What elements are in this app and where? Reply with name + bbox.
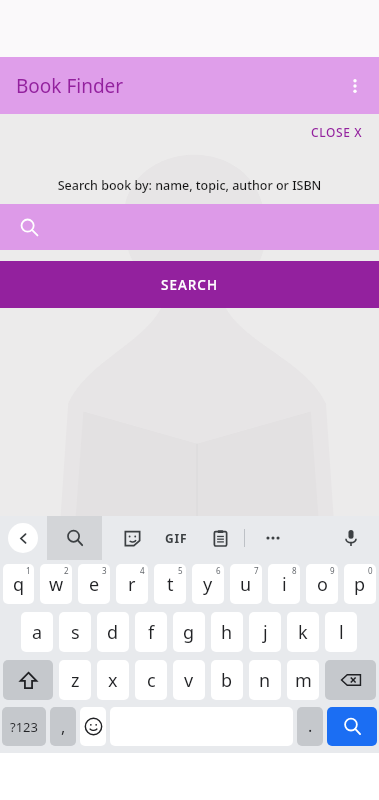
button[interactable]: Emoji bbox=[80, 707, 106, 746]
button[interactable]: c bbox=[135, 660, 167, 700]
button[interactable]: i bbox=[268, 564, 300, 604]
staticText: w bbox=[49, 572, 64, 597]
button[interactable]: Clipboard bbox=[198, 516, 242, 560]
staticText: g bbox=[183, 620, 195, 645]
button[interactable]: s bbox=[59, 612, 91, 652]
button[interactable]: Back bbox=[8, 523, 38, 553]
staticText: a bbox=[32, 620, 43, 645]
staticText: h bbox=[221, 620, 233, 645]
staticText: 0 bbox=[368, 565, 373, 576]
staticText: b bbox=[221, 668, 233, 693]
staticText: v bbox=[184, 668, 194, 693]
staticText: GIF bbox=[165, 530, 188, 546]
staticText: p bbox=[354, 572, 366, 597]
button[interactable]: More bbox=[251, 516, 295, 560]
button[interactable]: u bbox=[230, 564, 262, 604]
staticText: 1 bbox=[26, 565, 31, 576]
button[interactable]: t bbox=[154, 564, 186, 604]
button[interactable]: f bbox=[135, 612, 167, 652]
staticText: u bbox=[240, 572, 252, 597]
button[interactable]: b bbox=[211, 660, 243, 700]
staticText: 8 bbox=[292, 565, 297, 576]
button[interactable]: More options bbox=[331, 62, 379, 110]
staticText: e bbox=[89, 572, 100, 597]
button[interactable]: Backspace bbox=[325, 660, 376, 700]
staticText: 7 bbox=[254, 565, 259, 576]
button[interactable]: v bbox=[173, 660, 205, 700]
staticText: Search book by: name, topic, author or I… bbox=[0, 177, 379, 194]
staticText: . bbox=[308, 715, 313, 737]
staticText: t bbox=[167, 572, 174, 597]
button[interactable]: q bbox=[3, 564, 34, 604]
staticText: ?123 bbox=[10, 718, 38, 736]
button[interactable]: Shift bbox=[3, 660, 53, 700]
button[interactable]: Stickers bbox=[110, 516, 154, 560]
staticText: r bbox=[128, 572, 136, 597]
button[interactable]: j bbox=[249, 612, 281, 652]
staticText: y bbox=[203, 572, 213, 597]
button[interactable]: n bbox=[249, 660, 281, 700]
button[interactable]: , bbox=[50, 707, 76, 746]
button[interactable]: d bbox=[97, 612, 129, 652]
button[interactable]: . bbox=[297, 707, 323, 746]
button[interactable]: Voice input bbox=[329, 516, 373, 560]
button[interactable]: Search bbox=[327, 707, 377, 746]
staticText: z bbox=[71, 668, 80, 693]
staticText: SEARCH bbox=[161, 276, 218, 294]
button[interactable]: z bbox=[59, 660, 91, 700]
button[interactable]: Search bbox=[47, 516, 102, 560]
button[interactable]: h bbox=[211, 612, 243, 652]
staticText: Book Finder bbox=[16, 73, 124, 99]
button[interactable]: x bbox=[97, 660, 129, 700]
button[interactable]: e bbox=[78, 564, 110, 604]
staticText: k bbox=[298, 620, 308, 645]
staticText: 2 bbox=[64, 565, 69, 576]
button[interactable]: g bbox=[173, 612, 205, 652]
button[interactable]: w bbox=[40, 564, 72, 604]
staticText: 6 bbox=[216, 565, 221, 576]
button[interactable]: ?123 bbox=[2, 707, 46, 746]
staticText: n bbox=[259, 668, 271, 693]
staticText: q bbox=[13, 572, 25, 597]
staticText: 5 bbox=[178, 565, 183, 576]
button[interactable] bbox=[0, 204, 379, 250]
staticText: l bbox=[339, 620, 344, 645]
staticText: 9 bbox=[330, 565, 335, 576]
button[interactable]: p bbox=[344, 564, 376, 604]
staticText: , bbox=[61, 716, 66, 738]
staticText: CLOSE X bbox=[311, 124, 363, 140]
staticText: o bbox=[317, 572, 328, 597]
staticText: s bbox=[71, 620, 80, 645]
staticText: 3 bbox=[102, 565, 107, 576]
button[interactable]: SEARCH bbox=[0, 261, 379, 308]
button[interactable]: CLOSE X bbox=[307, 120, 367, 144]
staticText: m bbox=[295, 668, 312, 693]
staticText: 4 bbox=[140, 565, 145, 576]
staticText: i bbox=[282, 572, 287, 597]
staticText: f bbox=[148, 620, 155, 645]
button[interactable]: m bbox=[287, 660, 319, 700]
button[interactable]: r bbox=[116, 564, 148, 604]
staticText: d bbox=[107, 620, 119, 645]
button[interactable]: y bbox=[192, 564, 224, 604]
button[interactable]: a bbox=[21, 612, 53, 652]
button[interactable]: k bbox=[287, 612, 319, 652]
button[interactable]: l bbox=[325, 612, 357, 652]
button[interactable]: o bbox=[306, 564, 338, 604]
staticText: x bbox=[108, 668, 118, 693]
staticText: j bbox=[263, 620, 268, 645]
button[interactable]: GIF bbox=[154, 516, 198, 560]
staticText: c bbox=[147, 668, 156, 693]
